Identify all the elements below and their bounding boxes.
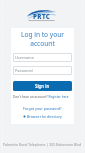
button[interactable]: Password: [13, 66, 72, 75]
staticText: Forgot your password?: [23, 106, 62, 111]
staticText: Browse the directory: [27, 114, 62, 119]
staticText: Log in to your account: [16, 30, 69, 48]
staticText: Username: [15, 55, 34, 60]
button[interactable]: PRTC home: [27, 9, 56, 21]
staticText: Palmetto Rural Telephone | 202 Robertson…: [3, 142, 82, 147]
button[interactable]: Browse the directory: [23, 114, 62, 119]
staticText: PRTC: [33, 12, 51, 20]
button[interactable]: Sign in: [13, 81, 72, 91]
staticText: Don't have an account? Register here: [13, 95, 69, 99]
staticText: Password: [15, 68, 33, 73]
button[interactable]: Forgot your password?: [23, 106, 62, 111]
staticText: Sign in: [35, 83, 50, 89]
button[interactable]: Username: [13, 53, 72, 62]
button[interactable]: Don't have an account? Register here: [13, 95, 69, 99]
